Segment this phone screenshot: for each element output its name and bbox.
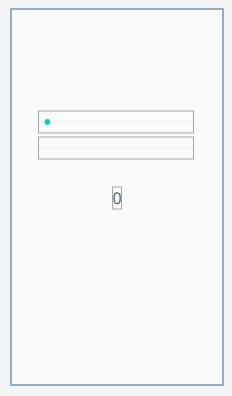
- button[interactable]: Text field: [38, 137, 193, 159]
- button[interactable]: Status field: [38, 111, 193, 133]
- button[interactable]: 0: [112, 187, 121, 209]
- staticText: 0: [112, 187, 121, 209]
